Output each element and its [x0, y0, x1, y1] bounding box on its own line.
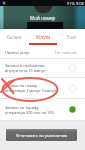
button[interactable]: Звонки и сообщения внутри сети 15 минут — [0, 59, 85, 77]
staticText: Баланс — [7, 34, 23, 40]
button[interactable]: Звонки на номер оператора 3 минут 3 мину… — [0, 78, 85, 98]
staticText: 51% 9:08 — [67, 1, 84, 6]
staticText: Услуги — [36, 34, 51, 40]
button[interactable]: Звонки по тарифу оператора 500 смс на 10… — [0, 99, 85, 120]
staticText: Мой номер — [30, 15, 56, 21]
button[interactable]: Ещё — [57, 29, 85, 46]
staticText: На главной — [55, 50, 77, 55]
other: Toggle — [68, 84, 77, 93]
button[interactable]: Услуги — [29, 29, 57, 46]
button[interactable]: Баланс — [0, 29, 29, 46]
staticText: Установить по умолчанию — [16, 133, 68, 138]
staticText: Звонки на номер оператора 3 минут 3 мину… — [5, 83, 68, 93]
other: Toggle — [68, 105, 77, 114]
button[interactable]: Пакеты услуг — [0, 46, 85, 58]
staticText: Звонки и сообщения внутри сети 15 минут — [5, 63, 68, 73]
other: Toggle — [68, 64, 77, 73]
staticText: Ещё — [67, 34, 76, 40]
staticText: Звонки по тарифу оператора 500 смс на 10… — [5, 105, 68, 115]
staticText: Пакеты услуг — [5, 50, 55, 55]
button[interactable]: Установить по умолчанию — [6, 129, 77, 141]
